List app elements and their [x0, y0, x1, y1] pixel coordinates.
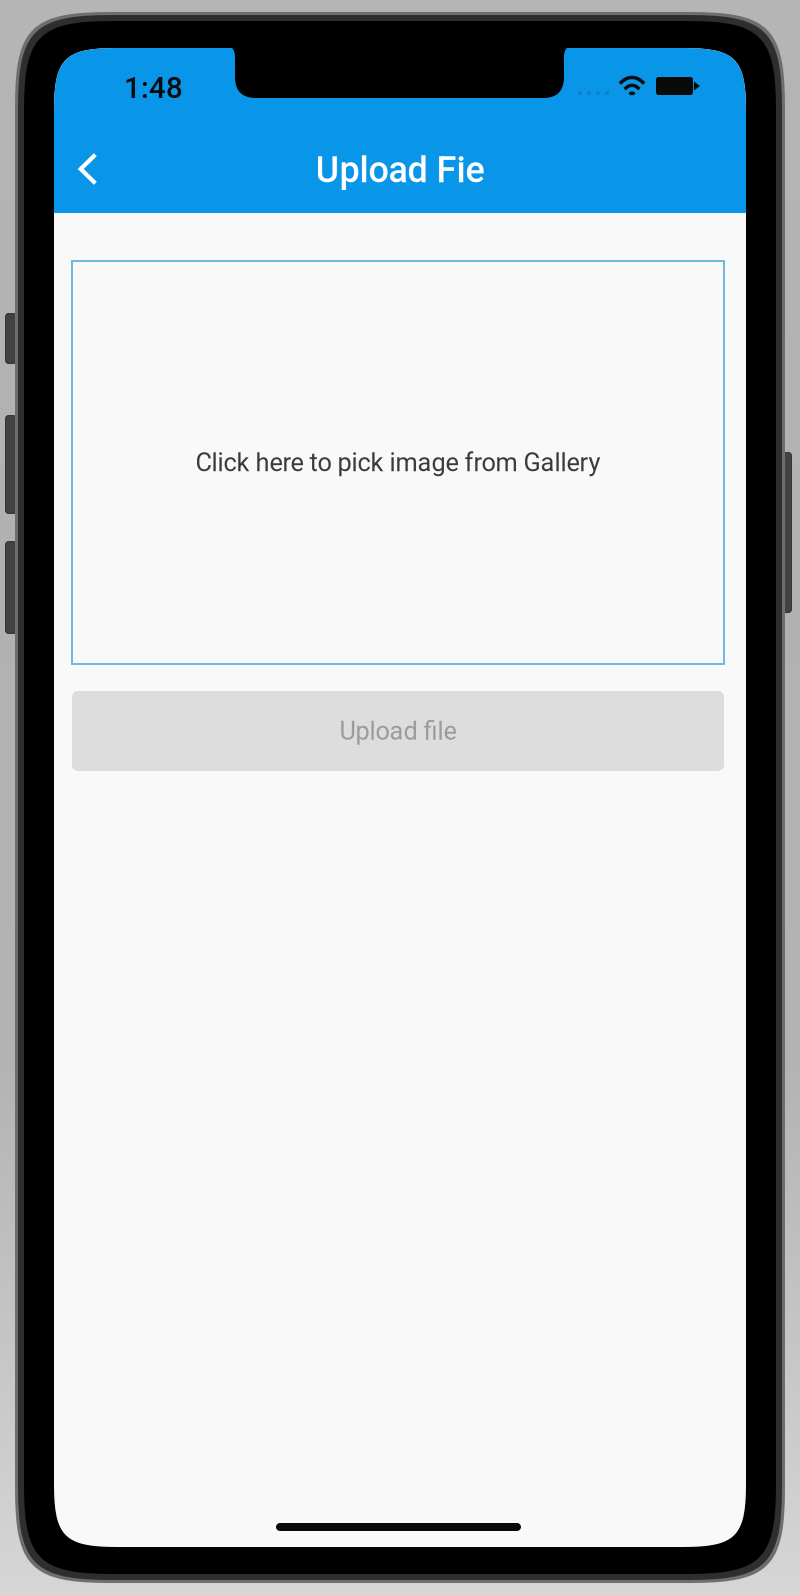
- staticText: Click here to pick image from Gallery: [195, 448, 600, 477]
- staticText: Upload file: [339, 716, 456, 746]
- button[interactable]: Back: [53, 133, 123, 205]
- button[interactable]: Upload file: [72, 691, 724, 771]
- staticText: 1:48: [124, 71, 183, 105]
- button[interactable]: Click here to pick image from Gallery: [72, 261, 724, 664]
- staticText: Upload Fie: [315, 149, 484, 191]
